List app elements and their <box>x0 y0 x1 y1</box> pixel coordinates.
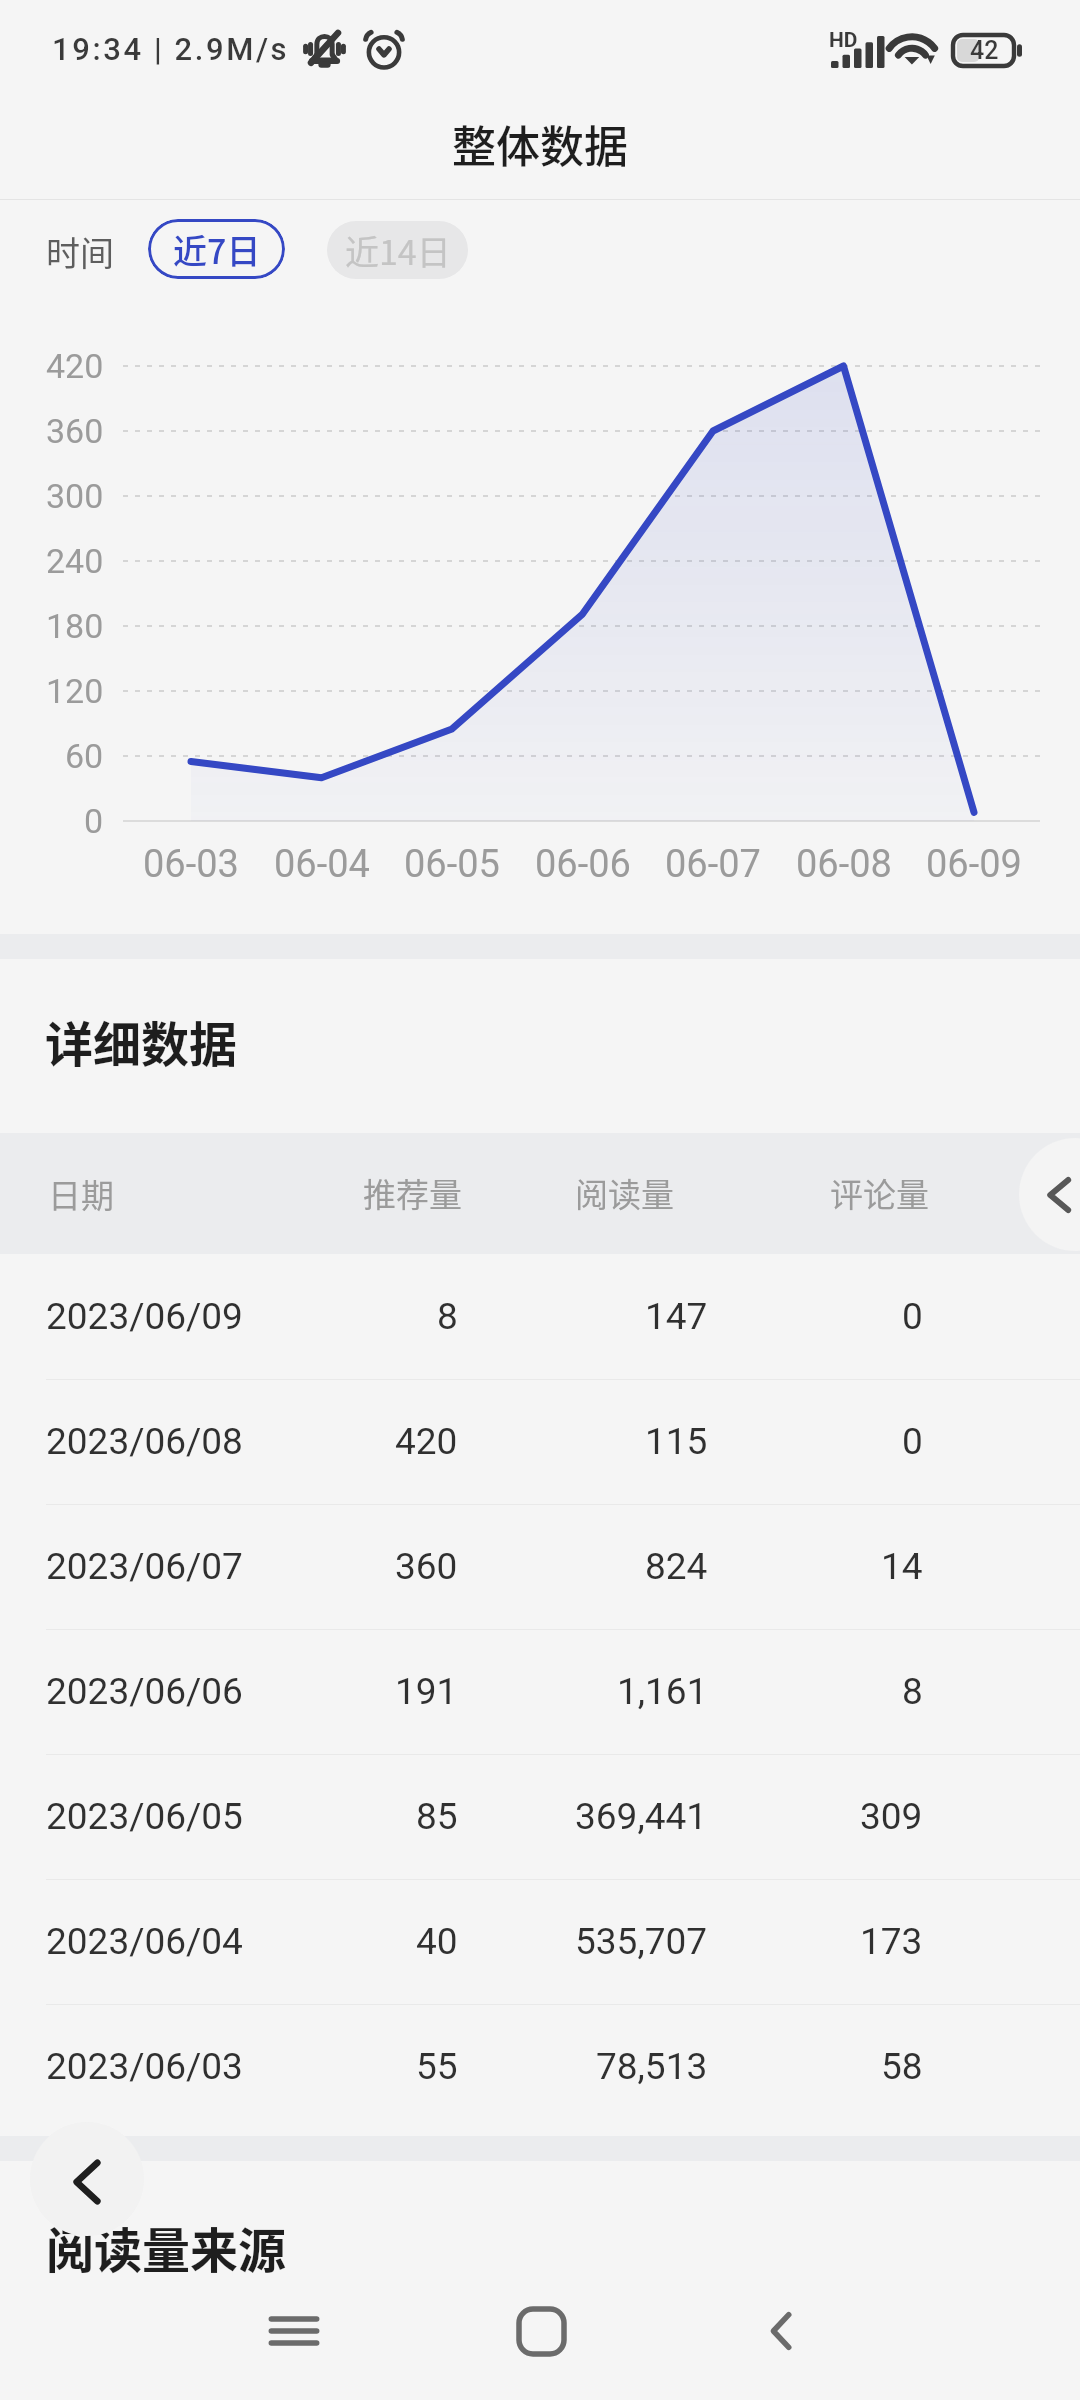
button[interactable]: Scroll left <box>1019 1138 1080 1251</box>
staticText: 06-07 <box>665 842 761 887</box>
button[interactable]: Home <box>481 2271 601 2391</box>
staticText: HD <box>829 28 858 53</box>
staticText: 2023/06/04 <box>46 1920 243 1963</box>
staticText: 535,707 <box>575 1920 708 1963</box>
staticText: 115 <box>645 1420 708 1463</box>
staticText: 147 <box>645 1295 708 1338</box>
staticText: 2023/06/09 <box>46 1295 243 1338</box>
staticText: 06-04 <box>274 842 370 887</box>
staticText: 85 <box>416 1795 458 1838</box>
staticText: 2023/06/06 <box>46 1670 243 1713</box>
button[interactable]: 2023/06/03 <box>0 2004 1080 2129</box>
staticText: 173 <box>860 1920 923 1963</box>
staticText: 360 <box>395 1545 458 1588</box>
staticText: 58 <box>881 2045 923 2088</box>
staticText: 06-08 <box>796 842 892 887</box>
staticText: 时间 <box>46 227 114 276</box>
button[interactable]: 2023/06/05 <box>0 1754 1080 1879</box>
staticText: 阅读量 <box>575 1169 674 1217</box>
staticText: 420 <box>395 1420 458 1463</box>
button[interactable]: 2023/06/07 <box>0 1504 1080 1629</box>
staticText: 40 <box>416 1920 458 1963</box>
staticText: 60 <box>65 736 104 776</box>
button[interactable]: 2023/06/04 <box>0 1879 1080 2004</box>
staticText: 06-06 <box>535 842 631 887</box>
button[interactable]: Back <box>723 2271 843 2391</box>
staticText: 2023/06/07 <box>46 1545 243 1588</box>
staticText: 0 <box>902 1295 923 1338</box>
staticText: 06-05 <box>404 842 500 887</box>
staticText: 2023/06/05 <box>46 1795 243 1838</box>
staticText: 06-09 <box>926 842 1022 887</box>
staticText: 详细数据 <box>45 1006 238 1076</box>
staticText: 14 <box>881 1545 923 1588</box>
staticText: 评论量 <box>830 1169 929 1217</box>
staticText: 360 <box>46 411 104 451</box>
button[interactable]: Back <box>30 2122 144 2236</box>
staticText: 19:34 | 2.9M/s <box>52 31 290 67</box>
staticText: 8 <box>437 1295 458 1338</box>
staticText: 300 <box>46 476 104 516</box>
staticText: 日期 <box>48 1170 114 1218</box>
staticText: 78,513 <box>596 2045 708 2088</box>
staticText: 06-03 <box>143 842 239 887</box>
staticText: 2023/06/03 <box>46 2045 243 2088</box>
staticText: 309 <box>860 1795 923 1838</box>
staticText: 近14日 <box>345 226 451 275</box>
button[interactable]: 2023/06/09 <box>0 1254 1080 1379</box>
staticText: 0 <box>84 801 104 841</box>
button[interactable]: 2023/06/08 <box>0 1379 1080 1504</box>
staticText: 近7日 <box>173 225 261 274</box>
staticText: 369,441 <box>575 1795 708 1838</box>
staticText: 1,161 <box>617 1670 708 1713</box>
staticText: 整体数据 <box>452 112 628 176</box>
staticText: 240 <box>46 541 104 581</box>
staticText: 42 <box>970 36 999 65</box>
staticText: 180 <box>46 606 104 646</box>
staticText: 120 <box>46 671 104 711</box>
staticText: 阅读量来源 <box>46 2212 287 2282</box>
button[interactable]: 近7日 <box>148 219 285 279</box>
staticText: 420 <box>46 346 104 386</box>
staticText: 2023/06/08 <box>46 1420 243 1463</box>
button[interactable]: 2023/06/06 <box>0 1629 1080 1754</box>
button[interactable]: Recent apps <box>234 2271 354 2391</box>
staticText: 0 <box>902 1420 923 1463</box>
staticText: 191 <box>395 1670 458 1713</box>
button[interactable]: 近14日 <box>327 221 468 279</box>
staticText: 824 <box>645 1545 708 1588</box>
staticText: 8 <box>902 1670 923 1713</box>
staticText: 55 <box>416 2045 458 2088</box>
staticText: 推荐量 <box>363 1169 462 1217</box>
